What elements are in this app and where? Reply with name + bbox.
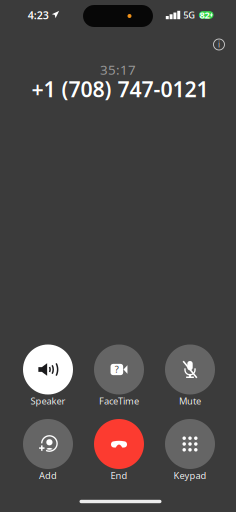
staticText: Add — [39, 469, 57, 482]
button[interactable]: Keypad — [157, 419, 223, 482]
button[interactable]: Call details — [206, 31, 232, 57]
staticText: i — [218, 39, 220, 50]
button[interactable]: Add — [15, 419, 81, 482]
staticText: 82 — [199, 9, 209, 21]
staticText: Keypad — [173, 469, 206, 482]
button[interactable]: ? — [86, 344, 152, 407]
staticText: Mute — [179, 395, 201, 407]
staticText: ? — [115, 363, 119, 375]
staticText: FaceTime — [99, 395, 139, 407]
staticText: 35:17 — [100, 61, 136, 78]
button[interactable]: End — [86, 419, 152, 482]
button[interactable]: Mute — [157, 344, 223, 407]
staticText: 4:23 — [28, 8, 49, 22]
staticText: Speaker — [30, 395, 65, 407]
staticText: End — [110, 469, 127, 482]
staticText: 5G — [183, 9, 195, 21]
staticText: +1 (708) 747-0121 — [31, 75, 208, 103]
button[interactable]: Speaker — [15, 344, 81, 407]
